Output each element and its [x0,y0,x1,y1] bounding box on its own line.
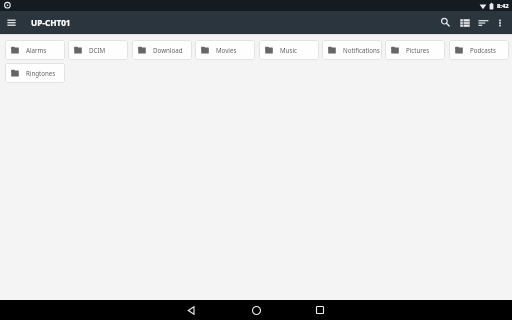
staticText: 8:42 [497,2,509,10]
staticText: UP-CHT01 [31,17,71,28]
staticText: DCIM [89,46,106,54]
button[interactable]: DCIM [68,40,128,60]
button[interactable] [455,11,474,34]
button[interactable]: Notifications [322,40,382,60]
staticText: Notifications [343,46,380,54]
button[interactable] [436,11,455,34]
staticText: Alarms [26,46,47,54]
staticText: Podcasts [470,46,496,54]
button[interactable]: Pictures [385,40,445,60]
staticText: Music [280,46,297,54]
button[interactable] [474,11,493,34]
staticText: Movies [216,46,237,54]
staticText: Download [153,46,183,54]
button[interactable]: Movies [195,40,255,60]
button[interactable] [182,300,200,320]
staticText: Pictures [406,46,430,54]
button[interactable]: Music [259,40,319,60]
staticText: Ringtones [26,69,56,77]
button[interactable] [0,11,22,34]
button[interactable] [311,300,329,320]
button[interactable]: Ringtones [5,63,65,83]
button[interactable] [493,11,507,34]
button[interactable]: Download [132,40,192,60]
button[interactable]: Podcasts [449,40,509,60]
button[interactable]: Alarms [5,40,65,60]
button[interactable] [247,300,265,320]
